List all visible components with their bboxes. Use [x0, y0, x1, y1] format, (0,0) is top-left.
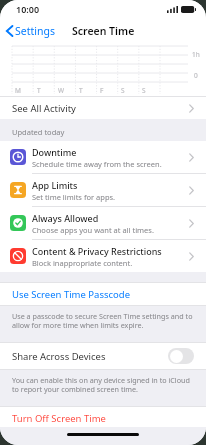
staticText: M	[15, 86, 21, 95]
staticText: W	[58, 86, 65, 95]
staticText: Schedule time away from the screen.	[32, 159, 162, 169]
staticText: You can enable this on any device signed…	[12, 375, 194, 395]
staticText: 10:00	[16, 3, 40, 15]
button[interactable]: Share Across Devices toggle	[168, 348, 194, 364]
staticText: Content & Privacy Restrictions	[32, 245, 162, 257]
staticText: Choose apps you want at all times.	[32, 225, 154, 235]
button[interactable]: Always Allowed	[0, 207, 206, 239]
staticText: App Limits	[32, 179, 78, 191]
staticText: 1h	[192, 50, 200, 59]
staticText: Use Screen Time Passcode	[12, 288, 131, 301]
staticText: S	[121, 86, 125, 95]
staticText: F	[100, 86, 104, 95]
staticText: Use a passcode to secure Screen Time set…	[12, 311, 194, 331]
staticText: Always Allowed	[32, 212, 99, 224]
staticText: Share Across Devices	[12, 350, 168, 363]
staticText: Downtime	[32, 146, 77, 158]
staticText: Updated today	[12, 127, 65, 137]
button[interactable]: Settings	[0, 20, 61, 42]
staticText: Turn Off Screen Time	[12, 412, 106, 425]
button[interactable]: Turn Off Screen Time	[0, 407, 206, 429]
button[interactable]: Use Screen Time Passcode	[0, 283, 206, 305]
staticText: Block inappropriate content.	[32, 258, 133, 268]
button[interactable]: Content & Privacy Restrictions	[0, 240, 206, 272]
staticText: Settings	[15, 24, 55, 38]
button[interactable]: Downtime	[0, 141, 206, 173]
staticText: T	[37, 86, 41, 95]
button[interactable]: Share Across Devices	[0, 343, 206, 369]
staticText: 0	[194, 71, 198, 80]
staticText: Set time limits for apps.	[32, 192, 116, 202]
staticText: T	[79, 86, 83, 95]
staticText: Screen Time	[72, 24, 135, 38]
button[interactable]: App Limits	[0, 174, 206, 206]
button[interactable]: See All Activity	[0, 97, 206, 119]
staticText: S	[142, 86, 146, 95]
staticText: See All Activity	[12, 102, 189, 115]
